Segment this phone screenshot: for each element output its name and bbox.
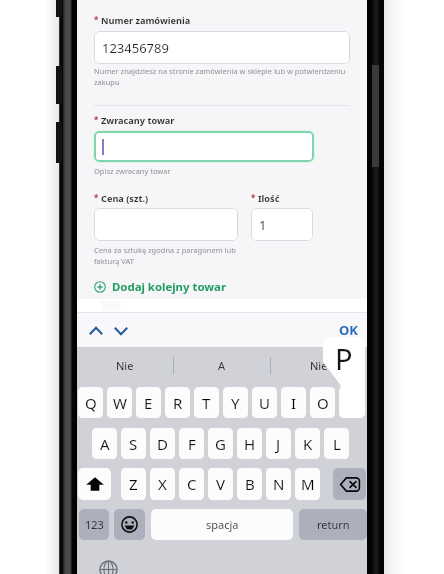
staticText: H — [244, 434, 256, 454]
staticText: G — [215, 434, 226, 454]
button[interactable]: spacja — [151, 509, 293, 540]
staticText: Q — [85, 393, 97, 413]
button[interactable]: V — [208, 468, 233, 500]
staticText: O — [317, 393, 329, 413]
staticText: Nie — [310, 358, 328, 373]
button[interactable]: 123 — [79, 509, 109, 540]
button[interactable]: U — [252, 387, 277, 418]
staticText: R — [173, 393, 183, 413]
button[interactable]: H — [237, 428, 262, 459]
staticText: 123 — [85, 517, 104, 532]
button[interactable]: Dodaj kolejny towar — [94, 276, 226, 298]
staticText: B — [245, 474, 255, 494]
staticText: Cena (szt.) — [101, 192, 149, 205]
staticText: * — [94, 14, 99, 25]
staticText: C — [187, 474, 197, 494]
button[interactable]: return — [299, 509, 367, 540]
button[interactable]: O — [310, 387, 335, 418]
staticText: Numer zamówienia — [101, 14, 191, 27]
staticText: P — [335, 339, 353, 378]
staticText: Nie — [116, 358, 134, 373]
staticText: A — [218, 358, 226, 373]
button[interactable]: K — [295, 428, 320, 459]
button[interactable]: J — [266, 428, 291, 459]
staticText: A — [100, 434, 110, 454]
staticText: Opisz zwracany towar — [94, 166, 294, 176]
staticText: 1 — [259, 216, 267, 234]
staticText: Numer znajdziesz na stronie zamówienia w… — [94, 66, 352, 87]
staticText: Ilość — [258, 192, 280, 205]
button[interactable]: Z — [121, 468, 146, 500]
staticText: Cena za sztukę zgodna z paragonem lub fa… — [94, 245, 239, 266]
button[interactable]: G — [208, 428, 233, 459]
button[interactable]: 1 — [251, 208, 313, 241]
button[interactable]: W — [107, 387, 132, 418]
button[interactable]: Shift — [78, 468, 111, 500]
staticText: OK — [339, 321, 358, 339]
button[interactable]: D — [150, 428, 175, 459]
staticText: X — [158, 474, 167, 494]
button[interactable]: Emoji — [114, 509, 145, 540]
button[interactable]: T — [194, 387, 219, 418]
button[interactable]: M — [295, 468, 320, 500]
button[interactable]: B — [237, 468, 262, 500]
button[interactable]: S — [121, 428, 146, 459]
button[interactable]: Nie — [271, 347, 367, 384]
button[interactable]: R — [165, 387, 190, 418]
button[interactable] — [94, 131, 314, 162]
staticText: L — [333, 434, 341, 454]
button[interactable]: L — [324, 428, 349, 459]
staticText: * — [94, 114, 99, 125]
staticText: J — [276, 434, 281, 454]
button[interactable]: F — [179, 428, 204, 459]
staticText: 123456789 — [102, 39, 169, 57]
staticText: W — [113, 393, 127, 413]
button[interactable]: Y — [223, 387, 248, 418]
button[interactable]: E — [136, 387, 161, 418]
button[interactable]: X — [150, 468, 175, 500]
staticText: spacja — [206, 517, 239, 532]
button[interactable]: A — [92, 428, 117, 459]
staticText: Y — [231, 393, 240, 413]
staticText: Dodaj kolejny towar — [112, 279, 226, 295]
button[interactable]: 123456789 — [94, 31, 350, 64]
button[interactable]: OK — [328, 315, 367, 345]
staticText: Z — [129, 474, 138, 494]
staticText: E — [144, 393, 153, 413]
button[interactable]: Previous field — [84, 319, 107, 342]
staticText: I — [291, 393, 297, 413]
staticText: Zwracany towar — [101, 114, 175, 127]
staticText: return — [317, 517, 350, 532]
button[interactable]: Nie — [77, 347, 173, 384]
button[interactable]: Change keyboard — [97, 558, 119, 574]
staticText: F — [188, 434, 196, 454]
staticText: * — [94, 192, 99, 203]
button[interactable]: A — [174, 347, 270, 384]
button[interactable]: P — [339, 387, 364, 418]
staticText: N — [273, 474, 285, 494]
staticText: D — [157, 434, 168, 454]
button[interactable]: I — [281, 387, 306, 418]
staticText: T — [202, 393, 211, 413]
button[interactable] — [94, 208, 238, 241]
staticText: * — [251, 192, 256, 203]
staticText: K — [303, 434, 313, 454]
button[interactable]: N — [266, 468, 291, 500]
staticText: M — [301, 474, 315, 494]
button[interactable]: C — [179, 468, 204, 500]
staticText: U — [259, 393, 270, 413]
button[interactable]: Q — [78, 387, 103, 418]
staticText: S — [129, 434, 138, 454]
staticText: V — [216, 474, 226, 494]
button[interactable]: Next field — [109, 319, 132, 342]
button[interactable]: Backspace — [333, 468, 366, 500]
